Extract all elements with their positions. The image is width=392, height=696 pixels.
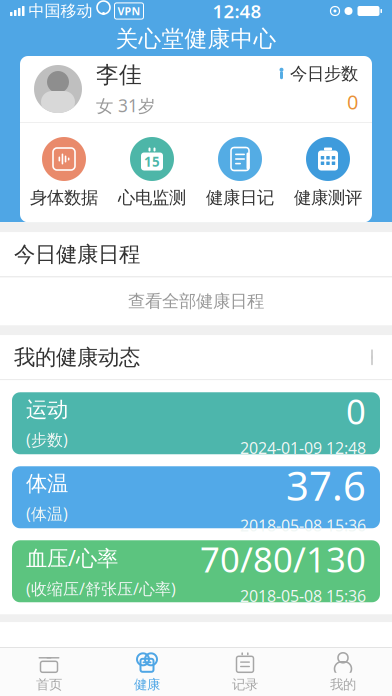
staticText: 身体数据 — [30, 187, 98, 208]
staticText: 中国移动 — [28, 1, 92, 21]
staticText: 血压/心率 — [26, 543, 118, 572]
staticText: 2024-01-09 12:48 — [240, 437, 366, 458]
staticText: (体温) — [26, 503, 68, 524]
staticText: 查看全部健康日程 — [128, 291, 264, 312]
button[interactable]: 15 — [108, 133, 196, 212]
staticText: 2018-05-08 15:36 — [240, 515, 366, 536]
staticText: 15 — [144, 153, 160, 170]
staticText: 健康日记 — [206, 187, 274, 208]
button[interactable]: 首页 — [0, 648, 98, 696]
staticText: 首页 — [36, 676, 62, 693]
staticText: 关心堂健康中心 — [115, 25, 276, 53]
staticText: 我的健康动态 — [14, 344, 140, 370]
staticText: 女 31岁 — [96, 94, 155, 117]
staticText: 2018-05-08 15:36 — [240, 585, 366, 606]
button[interactable]: 运动 — [12, 392, 380, 454]
staticText: 37.6 — [286, 459, 366, 512]
staticText: (步数) — [26, 429, 68, 450]
staticText: VPN — [117, 4, 140, 18]
button[interactable]: 血压/心率 — [12, 540, 380, 602]
staticText: 0 — [347, 88, 358, 115]
staticText: 今日步数 — [290, 63, 358, 84]
staticText: 12:48 — [212, 0, 261, 23]
button[interactable]: 体温 — [12, 466, 380, 528]
staticText: 我的 — [330, 676, 356, 693]
button[interactable]: 健康测评 — [284, 133, 372, 212]
button[interactable]: 身体数据 — [20, 133, 108, 212]
staticText: 0 — [346, 388, 366, 434]
staticText: 体温 — [26, 471, 68, 497]
staticText: 健康测评 — [294, 187, 362, 208]
staticText: 运动 — [26, 397, 68, 423]
staticText: 健康 — [134, 676, 160, 693]
staticText: 记录 — [232, 676, 258, 693]
staticText: 今日健康日程 — [14, 241, 140, 267]
staticText: 心电监测 — [118, 187, 186, 208]
button[interactable]: 我的健康动态 — [0, 335, 392, 379]
button[interactable]: 健康日记 — [196, 133, 284, 212]
staticText: 李佳 — [96, 61, 142, 89]
staticText: 70/80/130 — [200, 536, 366, 582]
button[interactable]: 健康 — [98, 648, 196, 696]
staticText: (收缩压/舒张压/心率) — [26, 578, 176, 599]
button[interactable]: 查看全部健康日程 — [0, 277, 392, 325]
button[interactable]: 记录 — [196, 648, 294, 696]
button[interactable]: 我的 — [294, 648, 392, 696]
